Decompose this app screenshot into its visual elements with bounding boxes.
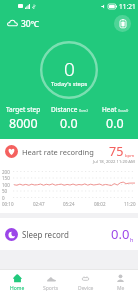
staticText: Jul 18, 2022 11:20 AM	[93, 159, 135, 164]
staticText: 11:21	[119, 2, 136, 11]
staticText: 30℃	[21, 18, 40, 30]
staticText: 200	[2, 169, 10, 175]
staticText: 100	[2, 182, 10, 188]
staticText: 02:47	[33, 201, 45, 207]
staticText: Heat	[102, 105, 117, 114]
button[interactable]: Sports	[34, 270, 68, 296]
button[interactable]: Sleep record	[0, 218, 138, 250]
staticText: h	[130, 236, 134, 243]
staticText: bpm	[125, 153, 135, 159]
staticText: 00:10	[2, 201, 14, 207]
staticText: 0.0	[106, 115, 124, 132]
staticText: 50	[2, 188, 8, 194]
staticText: 0.0	[60, 115, 78, 132]
staticText: Home	[10, 285, 25, 292]
staticText: Me	[117, 285, 125, 292]
staticText: Sports	[43, 285, 59, 292]
staticText: Distance	[51, 105, 78, 114]
staticText: 11:20	[124, 201, 136, 207]
staticText: 75	[109, 143, 124, 160]
staticText: 05:24	[63, 201, 75, 207]
staticText: (kcal)	[118, 108, 129, 114]
staticText: 0	[64, 56, 75, 82]
button[interactable]: Me	[103, 270, 138, 296]
staticText: 150	[2, 175, 10, 181]
staticText: Heart rate recording	[22, 147, 94, 157]
staticText: 8000	[9, 115, 38, 132]
staticText: Target step	[6, 105, 41, 114]
staticText: Sleep record	[22, 229, 69, 240]
staticText: 08:02	[94, 201, 106, 207]
staticText: 0.0	[111, 225, 130, 243]
staticText: (km)	[79, 108, 88, 114]
staticText: 0	[2, 195, 5, 201]
button[interactable]: Home	[0, 270, 34, 296]
button[interactable]: Device	[114, 15, 131, 32]
staticText: Device	[78, 285, 94, 292]
button[interactable]: Device	[68, 270, 103, 296]
button[interactable]: Heart rate recording	[0, 139, 138, 213]
staticText: Today's steps	[51, 80, 88, 88]
